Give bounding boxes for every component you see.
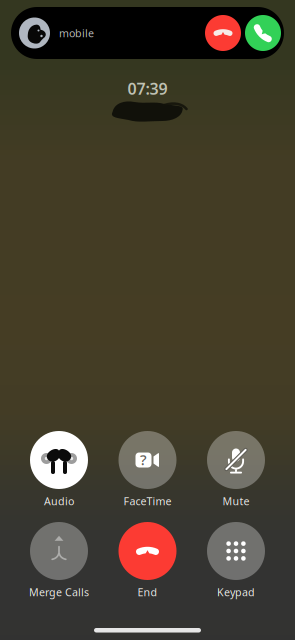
staticText: FaceTime: [123, 494, 171, 508]
button[interactable]: Merge Calls: [15, 522, 103, 599]
button[interactable]: Mute: [192, 431, 280, 508]
staticText: Mute: [222, 494, 249, 508]
button[interactable]: Accept call: [245, 15, 281, 51]
staticText: ?: [140, 450, 147, 469]
staticText: Audio: [44, 494, 74, 508]
button[interactable]: Audio: [15, 431, 103, 508]
staticText: 07:39: [127, 78, 167, 99]
button[interactable]: Decline call: [205, 15, 241, 51]
button[interactable]: End: [103, 522, 192, 599]
staticText: Merge Calls: [29, 585, 89, 599]
staticText: End: [137, 585, 157, 599]
staticText: Keypad: [217, 585, 255, 599]
button[interactable]: Keypad: [192, 522, 280, 599]
button[interactable]: ?: [103, 431, 192, 508]
staticText: mobile: [59, 26, 94, 40]
